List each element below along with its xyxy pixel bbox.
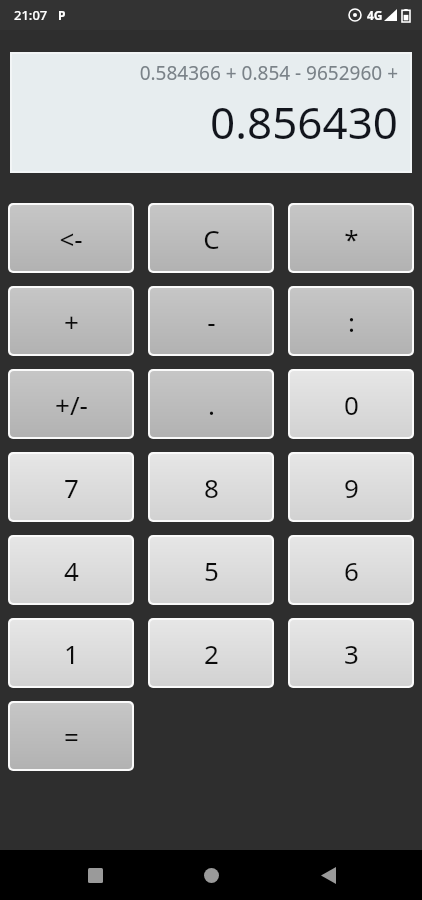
button[interactable]: 6	[290, 537, 412, 603]
button[interactable]: 1	[10, 620, 132, 686]
staticText: P	[58, 7, 66, 23]
staticText: 0.584366 + 0.854 - 9652960 +	[139, 60, 398, 86]
staticText: +/-	[55, 387, 88, 422]
staticText: <-	[59, 221, 83, 256]
staticText: +	[64, 304, 79, 339]
button[interactable]: 0.584366 + 0.854 - 9652960 +	[12, 54, 410, 171]
staticText: -	[207, 304, 216, 339]
button[interactable]: 0	[290, 371, 412, 437]
staticText: 6	[344, 553, 359, 588]
button[interactable]: -	[150, 288, 272, 354]
button[interactable]: 3	[290, 620, 412, 686]
button[interactable]: :	[290, 288, 412, 354]
button[interactable]: Recent apps	[73, 853, 117, 897]
staticText: 7	[64, 470, 79, 505]
button[interactable]: +	[10, 288, 132, 354]
button[interactable]: Home	[189, 853, 233, 897]
button[interactable]: 2	[150, 620, 272, 686]
button[interactable]: Back	[306, 853, 350, 897]
staticText: 21:07	[14, 6, 48, 24]
staticText: 5	[204, 553, 219, 588]
staticText: 9	[344, 470, 359, 505]
staticText: 1	[64, 636, 79, 671]
button[interactable]: 4	[10, 537, 132, 603]
staticText: 4	[64, 553, 79, 588]
button[interactable]: .	[150, 371, 272, 437]
staticText: C	[203, 221, 220, 256]
staticText: 2	[204, 636, 219, 671]
staticText: .	[208, 387, 215, 422]
staticText: =	[64, 719, 79, 754]
button[interactable]: <-	[10, 205, 132, 271]
button[interactable]: 5	[150, 537, 272, 603]
button[interactable]: 8	[150, 454, 272, 520]
button[interactable]: =	[10, 703, 132, 769]
button[interactable]: +/-	[10, 371, 132, 437]
button[interactable]: 9	[290, 454, 412, 520]
staticText: 0	[344, 387, 359, 422]
staticText: :	[348, 304, 355, 339]
staticText: 4G	[367, 7, 383, 23]
staticText: 8	[204, 470, 219, 505]
staticText: *	[344, 221, 359, 256]
staticText: 3	[344, 636, 359, 671]
button[interactable]: 7	[10, 454, 132, 520]
staticText: 0.856430	[210, 92, 398, 152]
button[interactable]: *	[290, 205, 412, 271]
button[interactable]: C	[150, 205, 272, 271]
